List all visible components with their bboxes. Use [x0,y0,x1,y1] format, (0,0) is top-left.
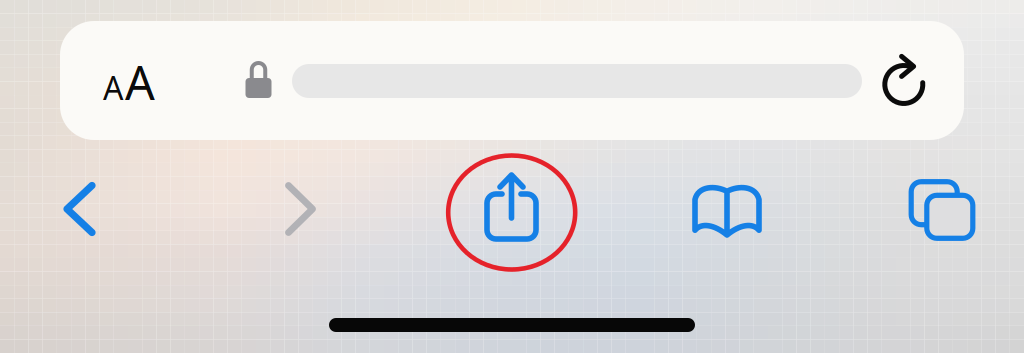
button[interactable]: Reload [875,47,933,111]
button[interactable]: Share [467,155,555,251]
button[interactable]: Bookmarks [683,168,771,254]
button[interactable]: Back [36,166,122,252]
button[interactable]: Text size [85,50,173,114]
button[interactable]: Tabs [899,167,985,253]
staticText: A [103,66,123,109]
button[interactable]: Forward [257,166,343,252]
staticText: A [125,51,155,113]
